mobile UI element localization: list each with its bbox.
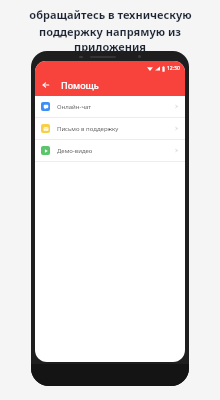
- staticText: Помощь: [61, 79, 99, 91]
- staticText: Письмо в поддержку: [57, 125, 119, 133]
- button[interactable]: Демо-видео: [35, 140, 185, 161]
- button[interactable]: Письмо в поддержку: [35, 118, 185, 139]
- button[interactable]: Back: [39, 78, 53, 92]
- button[interactable]: Онлайн-чат: [35, 96, 185, 117]
- staticText: 12:30: [167, 65, 180, 72]
- staticText: обращайтесь в техническую: [29, 7, 192, 22]
- staticText: поддержку напрямую из приложения: [8, 24, 212, 54]
- staticText: Онлайн-чат: [57, 103, 92, 111]
- staticText: Демо-видео: [57, 147, 93, 155]
